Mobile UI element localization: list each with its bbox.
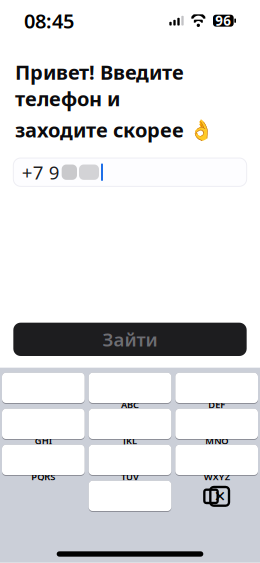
staticText: GHI bbox=[35, 434, 52, 447]
button[interactable]: 8 bbox=[89, 445, 171, 476]
staticText: 1 bbox=[36, 367, 50, 401]
staticText: +7 9 bbox=[22, 160, 60, 185]
button[interactable]: 9 bbox=[175, 445, 258, 476]
staticText: ABC bbox=[121, 398, 139, 411]
button[interactable]: 2 bbox=[89, 373, 171, 404]
staticText: 5 bbox=[123, 400, 137, 434]
staticText: 0 bbox=[123, 475, 137, 509]
staticText: JKL bbox=[123, 434, 137, 447]
staticText: Привет! Введите телефон и bbox=[15, 59, 184, 112]
staticText: TUV bbox=[121, 470, 139, 483]
staticText: ✕ bbox=[214, 488, 226, 505]
staticText: MNO bbox=[205, 434, 228, 447]
staticText: 8 bbox=[123, 436, 137, 470]
staticText: 6 bbox=[210, 400, 224, 434]
staticText: 4 bbox=[36, 400, 50, 434]
button[interactable]: 3 bbox=[175, 373, 258, 404]
staticText: 9 bbox=[210, 436, 224, 470]
button[interactable]: 5 bbox=[89, 409, 171, 440]
staticText: 2 bbox=[123, 364, 137, 398]
staticText: заходите скорее 👌 bbox=[15, 116, 214, 143]
staticText: PQRS bbox=[31, 470, 55, 483]
staticText: 7 bbox=[36, 436, 50, 470]
button[interactable]: 0 bbox=[89, 481, 171, 512]
staticText: 08:45 bbox=[24, 7, 74, 34]
staticText: Зайти bbox=[102, 327, 157, 352]
staticText: DEF bbox=[208, 398, 225, 411]
button[interactable]: 6 bbox=[175, 409, 258, 440]
button[interactable]: Delete bbox=[175, 481, 258, 512]
button[interactable]: 1 bbox=[2, 373, 85, 404]
staticText: WXYZ bbox=[204, 470, 230, 483]
button[interactable]: 7 bbox=[2, 445, 85, 476]
staticText: 3 bbox=[210, 364, 224, 398]
staticText: 96 bbox=[215, 12, 231, 29]
button[interactable]: 4 bbox=[2, 409, 85, 440]
button[interactable]: Зайти bbox=[13, 323, 247, 356]
